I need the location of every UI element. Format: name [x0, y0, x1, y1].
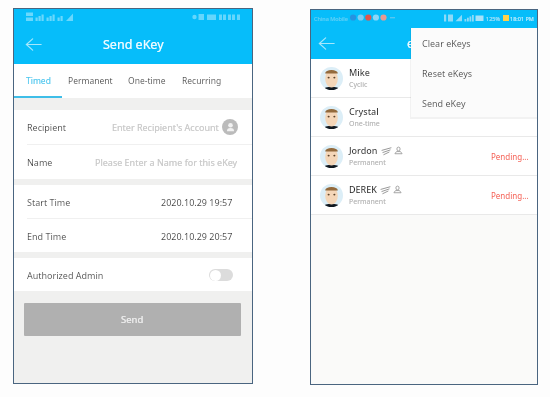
button[interactable]: Reset eKeys: [422, 58, 537, 88]
staticText: Send eKey: [103, 36, 164, 53]
staticText: Send eKey: [422, 97, 466, 109]
staticText: Name: [27, 156, 53, 168]
button[interactable]: Permanent: [62, 64, 119, 98]
staticText: Permanent: [349, 158, 386, 168]
staticText: 2020.10.29 19:57: [161, 196, 233, 208]
staticText: Recipient: [27, 121, 67, 133]
button[interactable]: Send: [24, 303, 241, 336]
staticText: Pending...: [491, 151, 529, 162]
staticText: Send: [121, 313, 144, 326]
staticText: Reset eKeys: [422, 67, 473, 79]
staticText: Mike: [349, 66, 370, 78]
button[interactable]: Name: [27, 145, 238, 179]
staticText: eKeys: [407, 35, 441, 52]
button[interactable]: Recurring: [174, 64, 230, 98]
staticText: China Mobile: [314, 15, 348, 22]
button[interactable]: Clear eKeys: [422, 28, 537, 58]
staticText: Crystal: [349, 105, 379, 117]
staticText: Permanent: [68, 75, 113, 87]
button[interactable]: End Time: [27, 219, 233, 252]
staticText: One-time: [349, 119, 380, 129]
staticText: Jordon: [349, 144, 378, 156]
button[interactable]: Back: [14, 25, 52, 64]
staticText: 2020.10.29 20:57: [161, 230, 233, 242]
button[interactable]: Timed: [14, 64, 62, 98]
button[interactable]: Back: [311, 26, 342, 60]
button[interactable]: Authorized Admin toggle: [209, 269, 233, 281]
button[interactable]: Recipient: [27, 110, 238, 144]
staticText: 125%: [486, 15, 501, 22]
button[interactable]: Crystal: [320, 98, 529, 136]
staticText: Authorized Admin: [27, 269, 104, 281]
staticText: 18:01 PM: [510, 15, 534, 22]
button[interactable]: Jordon: [320, 137, 529, 175]
button[interactable]: Start Time: [27, 185, 233, 218]
staticText: Start Time: [27, 196, 71, 208]
staticText: Permanent: [349, 197, 386, 207]
staticText: DEREK: [349, 183, 377, 195]
button[interactable]: One-time: [119, 64, 174, 98]
button[interactable]: Send eKey: [422, 88, 537, 117]
staticText: Enter Recipient's Account: [112, 121, 219, 133]
staticText: Please Enter a Name for this eKey: [95, 156, 238, 168]
button[interactable]: DEREK: [320, 176, 529, 214]
staticText: Recurring: [182, 75, 222, 87]
staticText: One-time: [128, 75, 166, 87]
staticText: End Time: [27, 230, 67, 242]
staticText: Cyclic: [349, 80, 368, 90]
staticText: Timed: [26, 75, 51, 87]
button[interactable]: Mike: [320, 59, 529, 97]
staticText: Pending...: [491, 190, 529, 201]
staticText: Clear eKeys: [422, 37, 471, 49]
